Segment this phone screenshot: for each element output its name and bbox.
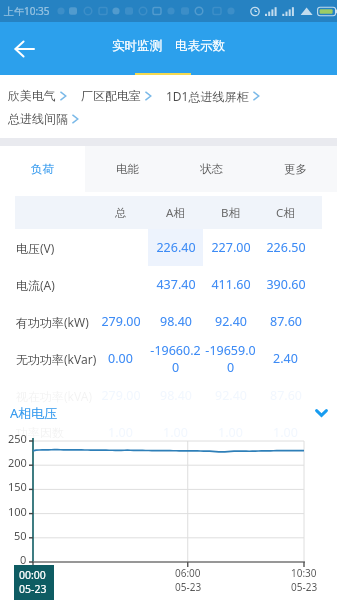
staticText: 0	[20, 552, 27, 567]
button[interactable]: 厂区配电室	[81, 84, 166, 107]
button[interactable]: Collapse	[307, 399, 335, 427]
button[interactable]: A相电压	[10, 404, 58, 422]
staticText: 总	[115, 206, 127, 220]
staticText: 00:00	[19, 568, 46, 582]
staticText: 无功功率(kVar)	[16, 351, 97, 367]
staticText: 总进线间隔	[8, 111, 68, 126]
staticText: 279.00	[101, 387, 141, 404]
staticText: 200	[8, 455, 27, 470]
staticText: 电表示数	[175, 38, 225, 54]
staticText: 411.60	[211, 276, 251, 293]
button[interactable]: 更多	[253, 146, 337, 192]
staticText: -19659.00	[203, 342, 258, 376]
staticText: 92.40	[215, 387, 247, 404]
staticText: 实时监测	[112, 38, 162, 54]
staticText: 2.40	[273, 350, 298, 367]
staticText: 87.60	[270, 313, 302, 330]
button[interactable]: 状态	[169, 146, 253, 192]
button[interactable]: 1D1总进线屏柜	[166, 84, 274, 107]
staticText: 厂区配电室	[81, 88, 141, 103]
staticText: 欣美电气	[8, 88, 56, 103]
staticText: 227.00	[211, 239, 251, 256]
staticText: 电压(V)	[16, 240, 55, 256]
staticText: 1.00	[108, 424, 133, 441]
button[interactable]: Back	[0, 25, 48, 73]
staticText: 上午10:35	[4, 4, 50, 18]
staticText: 1.00	[218, 424, 243, 441]
staticText: 1.00	[273, 424, 298, 441]
button[interactable]: 总进线间隔	[8, 107, 93, 130]
button[interactable]: 负荷	[0, 146, 85, 192]
staticText: B相	[221, 205, 240, 221]
staticText: C相	[276, 205, 295, 221]
staticText: 437.40	[156, 276, 196, 293]
staticText: 279.00	[101, 313, 141, 330]
staticText: 226.50	[266, 239, 306, 256]
staticText: 05-23	[175, 580, 202, 594]
staticText: 状态	[200, 162, 223, 176]
staticText: 功率因数	[16, 425, 64, 440]
staticText: 05-23	[19, 582, 47, 596]
staticText: 视在功率(kVA)	[16, 388, 92, 404]
staticText: 226.40	[156, 239, 196, 256]
staticText: 有功功率(kW)	[16, 314, 89, 330]
button[interactable]: 电能	[85, 146, 169, 192]
staticText: 150	[8, 479, 27, 494]
button[interactable]: 实时监测	[108, 38, 166, 54]
staticText: 1D1总进线屏柜	[166, 88, 249, 104]
staticText: 50	[14, 528, 27, 543]
staticText: 98.40	[160, 313, 192, 330]
button[interactable]: 电表示数	[171, 38, 229, 54]
staticText: -19660.20	[148, 342, 203, 376]
staticText: 10:30	[291, 566, 317, 580]
staticText: 100	[8, 504, 27, 519]
staticText: 电能	[116, 162, 139, 176]
staticText: 87.60	[270, 387, 302, 404]
staticText: 06:00	[175, 566, 201, 580]
staticText: 250	[8, 431, 27, 446]
staticText: 390.60	[266, 276, 306, 293]
staticText: 1.00	[163, 424, 188, 441]
staticText: A相	[166, 205, 185, 221]
staticText: 98.40	[160, 387, 192, 404]
staticText: 92.40	[215, 313, 247, 330]
staticText: 0.00	[108, 350, 133, 367]
staticText: 电流(A)	[16, 277, 55, 293]
staticText: 05-23	[291, 580, 318, 594]
button[interactable]: 欣美电气	[8, 84, 81, 107]
staticText: 负荷	[31, 162, 54, 176]
staticText: 更多	[284, 162, 307, 176]
